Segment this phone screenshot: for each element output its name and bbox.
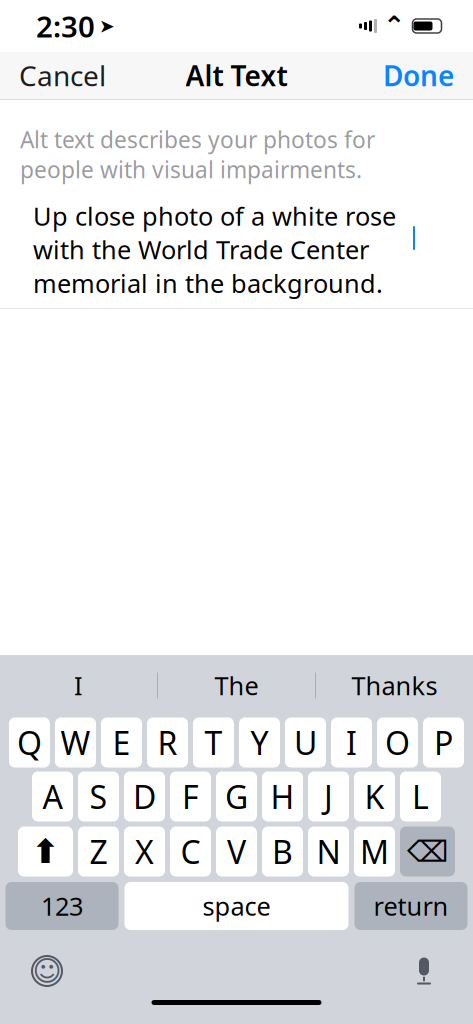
button[interactable]: P (423, 717, 464, 767)
button[interactable]: N (308, 826, 349, 876)
button[interactable]: Dictate (400, 947, 448, 995)
staticText: Alt text describes your photos for peopl… (20, 124, 375, 185)
staticText: Alt Text (185, 57, 287, 94)
button[interactable]: O (377, 717, 418, 767)
button[interactable]: C (170, 826, 211, 876)
staticText: D (133, 775, 156, 818)
button[interactable]: W (55, 717, 96, 767)
staticText: ☺ (32, 955, 61, 987)
button[interactable]: J (308, 771, 349, 821)
staticText: Q (17, 721, 42, 764)
staticText: The (214, 669, 258, 702)
staticText: C (180, 830, 200, 873)
button[interactable]: B (262, 826, 303, 876)
staticText: V (227, 830, 246, 873)
staticText: 2:30 (36, 6, 95, 45)
button[interactable]: F (170, 771, 211, 821)
staticText: ⬆ (31, 833, 59, 870)
button[interactable]: Delete (400, 826, 455, 876)
staticText: J (324, 775, 333, 818)
button[interactable]: G (216, 771, 257, 821)
staticText: T (204, 721, 222, 764)
button[interactable]: L (400, 771, 441, 821)
button[interactable]: D (124, 771, 165, 821)
staticText: O (385, 721, 410, 764)
staticText: I (74, 669, 83, 702)
staticText: Thanks (351, 669, 437, 702)
button[interactable]: S (78, 771, 119, 821)
staticText: L (412, 775, 429, 818)
button[interactable]: Done (367, 47, 470, 104)
staticText: return (373, 889, 448, 923)
staticText: G (225, 775, 248, 818)
button[interactable]: X (124, 826, 165, 876)
button[interactable]: Cancel (3, 47, 122, 104)
button[interactable]: M (354, 826, 395, 876)
button[interactable]: H (262, 771, 303, 821)
button[interactable]: I (331, 717, 372, 767)
button[interactable]: 123 (5, 882, 118, 930)
staticText: I (346, 721, 357, 764)
button[interactable]: The (158, 663, 315, 707)
staticText: H (270, 775, 294, 818)
staticText: K (364, 775, 384, 818)
staticText: N (316, 830, 340, 873)
button[interactable]: V (216, 826, 257, 876)
button[interactable]: Shift (18, 826, 73, 876)
staticText: ➤ (99, 15, 115, 37)
button[interactable]: I (0, 663, 157, 707)
staticText: W (60, 721, 90, 764)
staticText: X (135, 830, 154, 873)
button[interactable]: space (124, 882, 348, 930)
staticText: Done (383, 57, 454, 94)
staticText: Z (89, 830, 107, 873)
staticText: Y (250, 721, 268, 764)
staticText: ⌫ (407, 835, 448, 868)
staticText: S (89, 775, 107, 818)
staticText: Cancel (19, 57, 106, 94)
button[interactable]: T (193, 717, 234, 767)
staticText: E (112, 721, 130, 764)
button[interactable]: Z (78, 826, 119, 876)
button[interactable]: Q (9, 717, 50, 767)
button[interactable]: R (147, 717, 188, 767)
button[interactable]: E (101, 717, 142, 767)
staticText: space (202, 889, 270, 923)
staticText: R (157, 721, 177, 764)
button[interactable]: Thanks (316, 663, 473, 707)
staticText: M (360, 830, 389, 873)
staticText: U (294, 721, 317, 764)
button[interactable]: U (285, 717, 326, 767)
button[interactable]: A (32, 771, 73, 821)
button[interactable]: K (354, 771, 395, 821)
button[interactable]: Y (239, 717, 280, 767)
staticText: B (272, 830, 293, 873)
staticText: P (434, 721, 453, 764)
button[interactable]: return (354, 882, 467, 930)
staticText: F (182, 775, 199, 818)
staticText: ⌃ (383, 11, 405, 41)
staticText: A (42, 775, 62, 818)
staticText: 123 (41, 889, 83, 923)
button[interactable]: Emoji (23, 947, 71, 995)
staticText: Up close photo of a white rose with the … (33, 199, 396, 300)
